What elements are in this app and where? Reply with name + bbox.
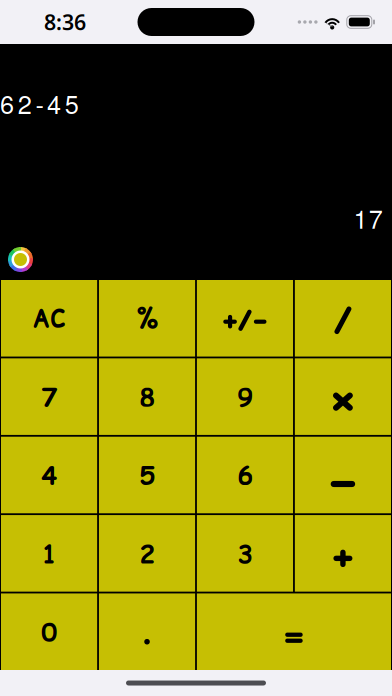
staticText: 5 xyxy=(139,457,154,493)
staticText: AC xyxy=(33,301,66,335)
staticText: 6 xyxy=(237,457,252,493)
button[interactable]: 1 xyxy=(1,515,97,592)
button[interactable]: 7 xyxy=(1,358,97,435)
staticText: 1 xyxy=(42,536,57,571)
button[interactable]: 3 xyxy=(197,515,293,592)
button[interactable]: % xyxy=(99,280,195,357)
staticText: 3 xyxy=(237,536,252,571)
staticText: 8 xyxy=(139,379,154,414)
button[interactable]: 5 xyxy=(99,437,195,513)
button[interactable]: Equals xyxy=(197,593,391,670)
button[interactable]: 8 xyxy=(99,358,195,435)
button[interactable]: 2 xyxy=(99,515,195,592)
staticText: 8:36 xyxy=(44,8,86,36)
staticText: 2 xyxy=(139,536,154,571)
staticText: 0 xyxy=(42,614,57,649)
staticText: 17 xyxy=(354,200,389,236)
staticText: 4 xyxy=(42,457,57,493)
staticText: 7 xyxy=(42,379,57,414)
button[interactable]: 0 xyxy=(1,593,97,670)
button[interactable]: Decimal point xyxy=(99,593,195,670)
button[interactable]: AC xyxy=(1,280,97,357)
staticText: 62-45 xyxy=(0,85,87,121)
button[interactable]: 6 xyxy=(197,437,293,513)
staticText: % xyxy=(136,300,158,337)
button[interactable]: Plus xyxy=(295,515,391,592)
button[interactable]: Theme colour xyxy=(0,236,43,280)
button[interactable]: Minus xyxy=(295,437,391,513)
button[interactable]: Plus minus xyxy=(197,280,293,357)
button[interactable]: Divide xyxy=(295,280,391,357)
button[interactable]: 9 xyxy=(197,358,293,435)
button[interactable]: 4 xyxy=(1,437,97,513)
staticText: 9 xyxy=(237,379,252,414)
button[interactable]: Multiply xyxy=(295,358,391,435)
